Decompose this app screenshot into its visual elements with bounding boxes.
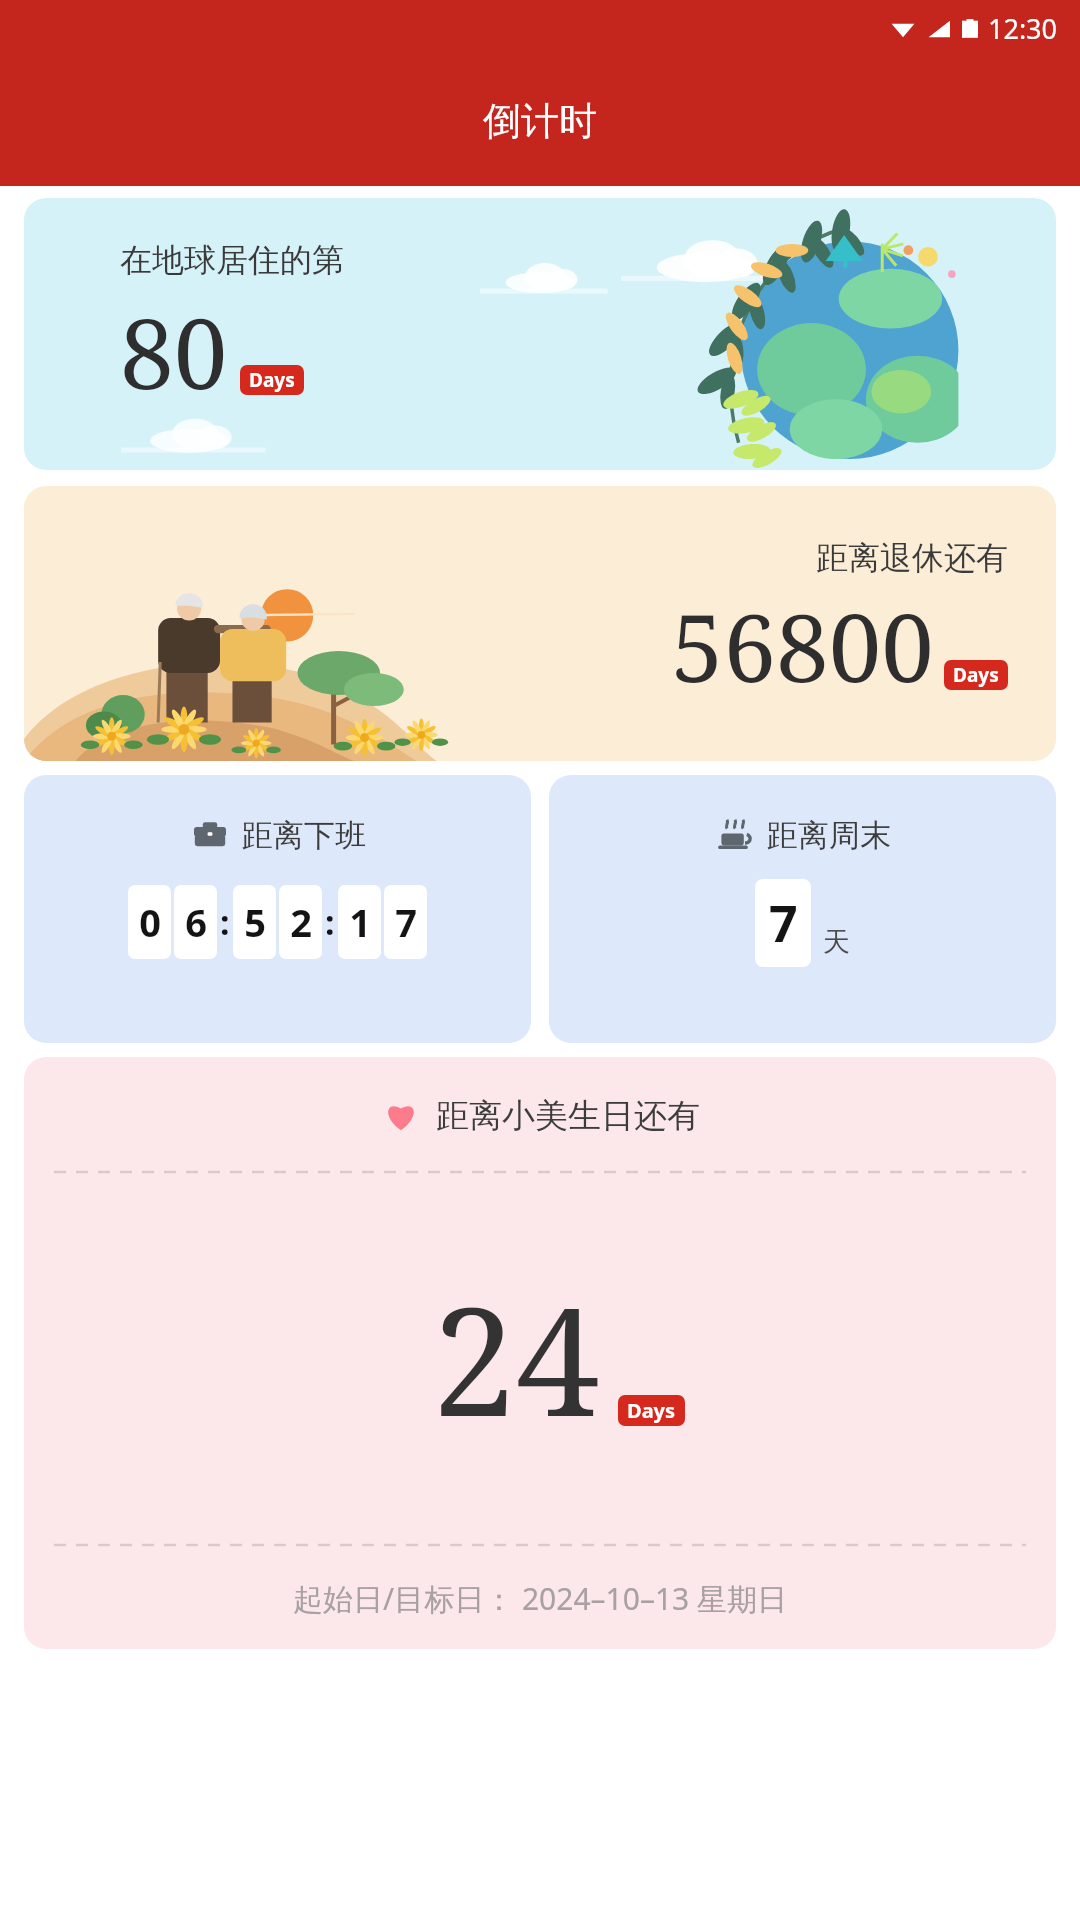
staticText: :	[220, 899, 230, 945]
staticText: 12:30	[988, 10, 1058, 47]
staticText: 距离周末	[767, 816, 891, 855]
staticText: 7	[769, 889, 798, 957]
staticText: 距离下班	[242, 816, 366, 855]
staticText: 距离小美生日还有	[436, 1095, 700, 1137]
staticText: 56800	[671, 582, 934, 710]
button[interactable]: 在地球居住的第	[24, 198, 1056, 470]
staticText: 起始日/目标日： 2024–10–13 星期日	[293, 1578, 788, 1619]
button[interactable]: 距离下班	[24, 775, 531, 1043]
staticText: 5	[244, 896, 266, 948]
staticText: Days	[249, 367, 295, 393]
button[interactable]: 距离小美生日还有	[24, 1057, 1056, 1649]
staticText: Days	[627, 1397, 676, 1424]
button[interactable]: 距离退休还有	[24, 486, 1056, 761]
staticText: 80	[120, 286, 228, 417]
staticText: :	[325, 899, 335, 945]
staticText: 6	[185, 896, 207, 948]
staticText: Days	[953, 662, 999, 688]
staticText: 2	[290, 896, 312, 948]
button[interactable]: 距离周末	[549, 775, 1056, 1043]
staticText: 距离退休还有	[816, 538, 1008, 578]
staticText: 在地球居住的第	[120, 240, 344, 280]
staticText: 24	[432, 1256, 600, 1460]
staticText: 天	[823, 925, 850, 959]
staticText: 1	[349, 896, 371, 948]
staticText: 倒计时	[483, 97, 597, 145]
staticText: 0	[139, 896, 161, 948]
staticText: 7	[395, 896, 417, 948]
